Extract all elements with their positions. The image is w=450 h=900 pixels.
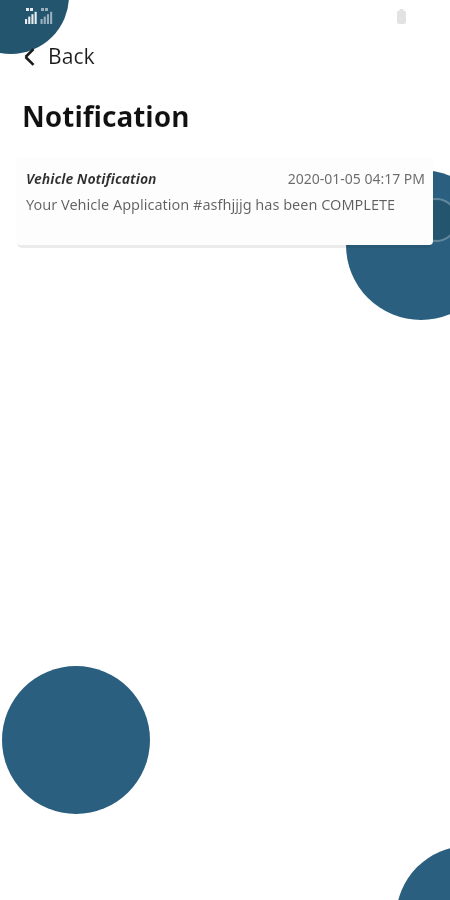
button[interactable]: Vehicle Notification (16, 157, 433, 245)
staticText: Your Vehicle Application #asfhjjjg has b… (26, 194, 396, 214)
staticText: Notification (22, 97, 190, 135)
button[interactable]: Back (22, 36, 109, 77)
staticText: 2020-01-05 04:17 PM (287, 169, 425, 188)
other: Back (22, 46, 38, 68)
staticText: Vehicle Notification (26, 169, 157, 188)
staticText: Back (48, 42, 95, 71)
